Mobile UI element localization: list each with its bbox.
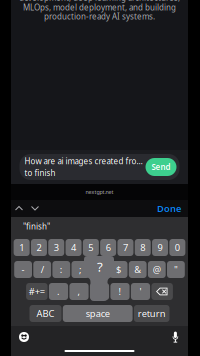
button[interactable]: ' xyxy=(131,283,150,300)
button[interactable]: 8 xyxy=(135,239,151,256)
button[interactable]: Emoji keyboard xyxy=(19,332,29,342)
staticText: Done xyxy=(157,202,181,215)
button[interactable]: space xyxy=(63,305,133,322)
staticText: 0 xyxy=(175,241,180,254)
staticText: "finish" xyxy=(23,221,50,232)
button[interactable]: . xyxy=(49,283,68,300)
button[interactable]: #+= xyxy=(26,283,48,300)
button[interactable] xyxy=(90,283,109,300)
staticText: $ xyxy=(116,263,121,276)
staticText: ( xyxy=(98,263,101,276)
button[interactable]: Previous field xyxy=(11,201,27,215)
staticText: How are ai images created from start xyxy=(24,156,145,166)
staticText: ? xyxy=(97,258,103,275)
staticText: 9 xyxy=(158,241,163,254)
button[interactable]: & xyxy=(129,261,147,278)
button[interactable]: Done xyxy=(157,202,188,215)
staticText: 5 xyxy=(88,241,93,254)
staticText: space xyxy=(86,307,110,320)
staticText: Send xyxy=(151,162,170,172)
button[interactable]: ( xyxy=(91,261,108,278)
button[interactable]: @ xyxy=(148,261,166,278)
button[interactable]: 0 xyxy=(169,239,185,256)
button[interactable]: ABC xyxy=(29,305,61,322)
button[interactable]: Send xyxy=(145,158,176,176)
staticText: ' xyxy=(139,285,141,298)
button[interactable]: ! xyxy=(110,283,130,300)
staticText: #+= xyxy=(29,285,45,298)
button[interactable]: 7 xyxy=(117,239,133,256)
button[interactable]: Dictate xyxy=(172,330,179,343)
staticText: nextgpt.net xyxy=(85,188,113,196)
staticText: to finish xyxy=(24,167,55,178)
button[interactable]: 3 xyxy=(48,239,64,256)
button[interactable]: 5 xyxy=(83,239,99,256)
staticText: . xyxy=(57,285,60,298)
button[interactable]: return xyxy=(134,305,169,322)
staticText: 8 xyxy=(140,241,145,254)
staticText: / xyxy=(41,263,44,276)
button[interactable]: Delete xyxy=(151,283,173,300)
staticText: 1 xyxy=(19,241,24,254)
staticText: 3 xyxy=(54,241,59,254)
button[interactable]: 6 xyxy=(100,239,116,256)
staticText: 4 xyxy=(71,241,76,254)
staticText: development, deep learning architectures… xyxy=(19,0,180,3)
staticText: @ xyxy=(153,263,161,276)
staticText: 2 xyxy=(36,241,41,254)
staticText: - xyxy=(22,263,25,276)
button[interactable]: 1 xyxy=(14,239,30,256)
button[interactable]: $ xyxy=(110,261,127,278)
staticText: " xyxy=(174,263,178,276)
staticText: 7 xyxy=(123,241,128,254)
button[interactable]: ; xyxy=(71,261,89,278)
button[interactable]: " xyxy=(167,261,185,278)
button[interactable]: , xyxy=(69,283,89,300)
staticText: & xyxy=(134,263,141,276)
staticText: , xyxy=(77,285,80,298)
staticText: 6 xyxy=(106,241,111,254)
staticText: ABC xyxy=(36,307,54,320)
staticText: ! xyxy=(118,285,121,298)
staticText: production-ready AI systems. xyxy=(44,11,155,22)
button[interactable]: 2 xyxy=(31,239,47,256)
button[interactable]: 4 xyxy=(66,239,82,256)
staticText: MLOps, model deployment, and building xyxy=(23,2,176,13)
button[interactable]: / xyxy=(33,261,51,278)
button[interactable]: : xyxy=(52,261,70,278)
button[interactable]: 9 xyxy=(152,239,168,256)
button[interactable]: Next field xyxy=(27,201,43,215)
staticText: ; xyxy=(79,263,82,276)
staticText: return xyxy=(138,307,166,320)
staticText: : xyxy=(60,263,63,276)
button[interactable]: - xyxy=(14,261,32,278)
